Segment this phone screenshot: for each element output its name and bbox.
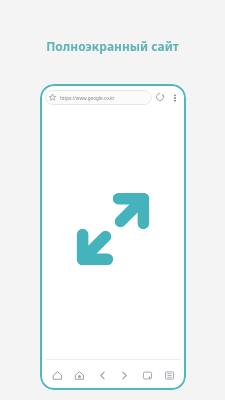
staticText: https://www.google.co.kr [60, 95, 115, 101]
button[interactable]: https://www.google.co.kr [45, 90, 152, 105]
button[interactable]: Fullscreen [67, 183, 159, 275]
button[interactable]: Home [47, 365, 67, 385]
button[interactable]: Reload [152, 89, 168, 105]
button[interactable]: More options [168, 91, 181, 104]
button[interactable]: Back [92, 365, 112, 385]
staticText: Полноэкранный сайт [46, 38, 179, 54]
button[interactable]: Bookmarks [69, 365, 89, 385]
button[interactable]: Forward [114, 365, 134, 385]
button[interactable]: Tabs [137, 365, 157, 385]
button[interactable]: Menu [159, 365, 179, 385]
